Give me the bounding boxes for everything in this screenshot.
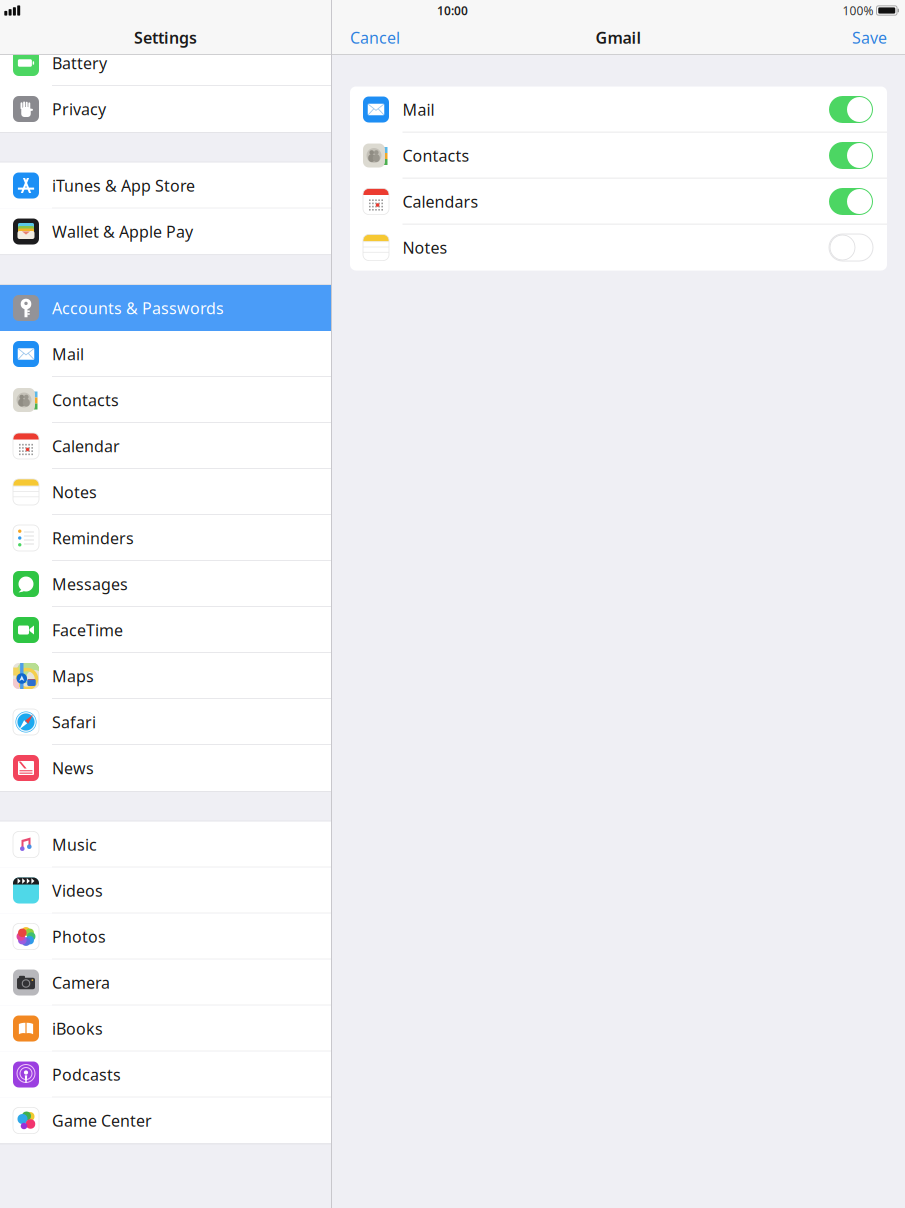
button[interactable]: FaceTime bbox=[0, 607, 331, 653]
staticText: Mail bbox=[402, 99, 434, 120]
button[interactable]: Save bbox=[852, 27, 887, 48]
button[interactable]: Music bbox=[0, 821, 331, 867]
staticText: Save bbox=[852, 27, 887, 48]
button[interactable]: Mail bbox=[350, 86, 887, 132]
staticText: Privacy bbox=[52, 98, 106, 120]
button[interactable]: Safari bbox=[0, 699, 331, 745]
button[interactable]: News bbox=[0, 745, 331, 791]
staticText: Camera bbox=[52, 972, 110, 993]
staticText: iTunes & App Store bbox=[52, 175, 195, 196]
button[interactable]: Calendars bbox=[350, 178, 887, 224]
staticText: Calendars bbox=[402, 191, 478, 212]
button[interactable]: Wallet & Apple Pay bbox=[0, 208, 331, 254]
staticText: iBooks bbox=[52, 1018, 103, 1039]
button[interactable]: Game Center bbox=[0, 1097, 331, 1143]
staticText: Accounts & Passwords bbox=[52, 297, 224, 319]
staticText: FaceTime bbox=[52, 619, 123, 641]
staticText: Videos bbox=[52, 880, 103, 901]
staticText: Music bbox=[52, 834, 97, 855]
button[interactable]: Cancel bbox=[350, 27, 400, 48]
staticText: News bbox=[52, 757, 94, 779]
button[interactable]: Calendar bbox=[0, 423, 331, 469]
staticText: Battery bbox=[52, 52, 107, 74]
staticText: Contacts bbox=[52, 389, 119, 411]
staticText: Maps bbox=[52, 665, 94, 687]
button[interactable]: Videos bbox=[0, 867, 331, 913]
staticText: Messages bbox=[52, 573, 128, 595]
button[interactable]: iBooks bbox=[0, 1005, 331, 1051]
staticText: Reminders bbox=[52, 527, 134, 549]
staticText: Calendar bbox=[52, 435, 120, 457]
button[interactable]: Notes bbox=[0, 469, 331, 515]
button[interactable]: Contacts bbox=[350, 132, 887, 178]
staticText: Gmail bbox=[595, 27, 641, 48]
staticText: Safari bbox=[52, 711, 96, 733]
staticText: Mail bbox=[52, 343, 84, 365]
button[interactable]: Podcasts bbox=[0, 1051, 331, 1097]
staticText: 10:00 bbox=[437, 2, 468, 18]
button[interactable]: Maps bbox=[0, 653, 331, 699]
staticText: 100% bbox=[842, 2, 873, 18]
button[interactable]: Battery bbox=[0, 40, 331, 86]
staticText: Photos bbox=[52, 926, 106, 947]
button[interactable]: Contacts bbox=[0, 377, 331, 423]
button[interactable]: Photos bbox=[0, 913, 331, 959]
button[interactable]: iTunes & App Store bbox=[0, 162, 331, 208]
staticText: Settings bbox=[134, 27, 197, 48]
button[interactable]: Accounts & Passwords bbox=[0, 285, 331, 331]
button[interactable]: Camera bbox=[0, 959, 331, 1005]
staticText: Wallet & Apple Pay bbox=[52, 221, 193, 242]
staticText: Game Center bbox=[52, 1110, 152, 1131]
button[interactable]: Privacy bbox=[0, 86, 331, 132]
button[interactable]: Messages bbox=[0, 561, 331, 607]
staticText: Podcasts bbox=[52, 1064, 121, 1085]
staticText: Contacts bbox=[402, 145, 469, 166]
staticText: Notes bbox=[52, 481, 97, 503]
button[interactable]: Reminders bbox=[0, 515, 331, 561]
button[interactable]: Mail bbox=[0, 331, 331, 377]
button[interactable]: Notes bbox=[350, 224, 887, 270]
staticText: Notes bbox=[402, 237, 447, 258]
staticText: Cancel bbox=[350, 27, 400, 48]
